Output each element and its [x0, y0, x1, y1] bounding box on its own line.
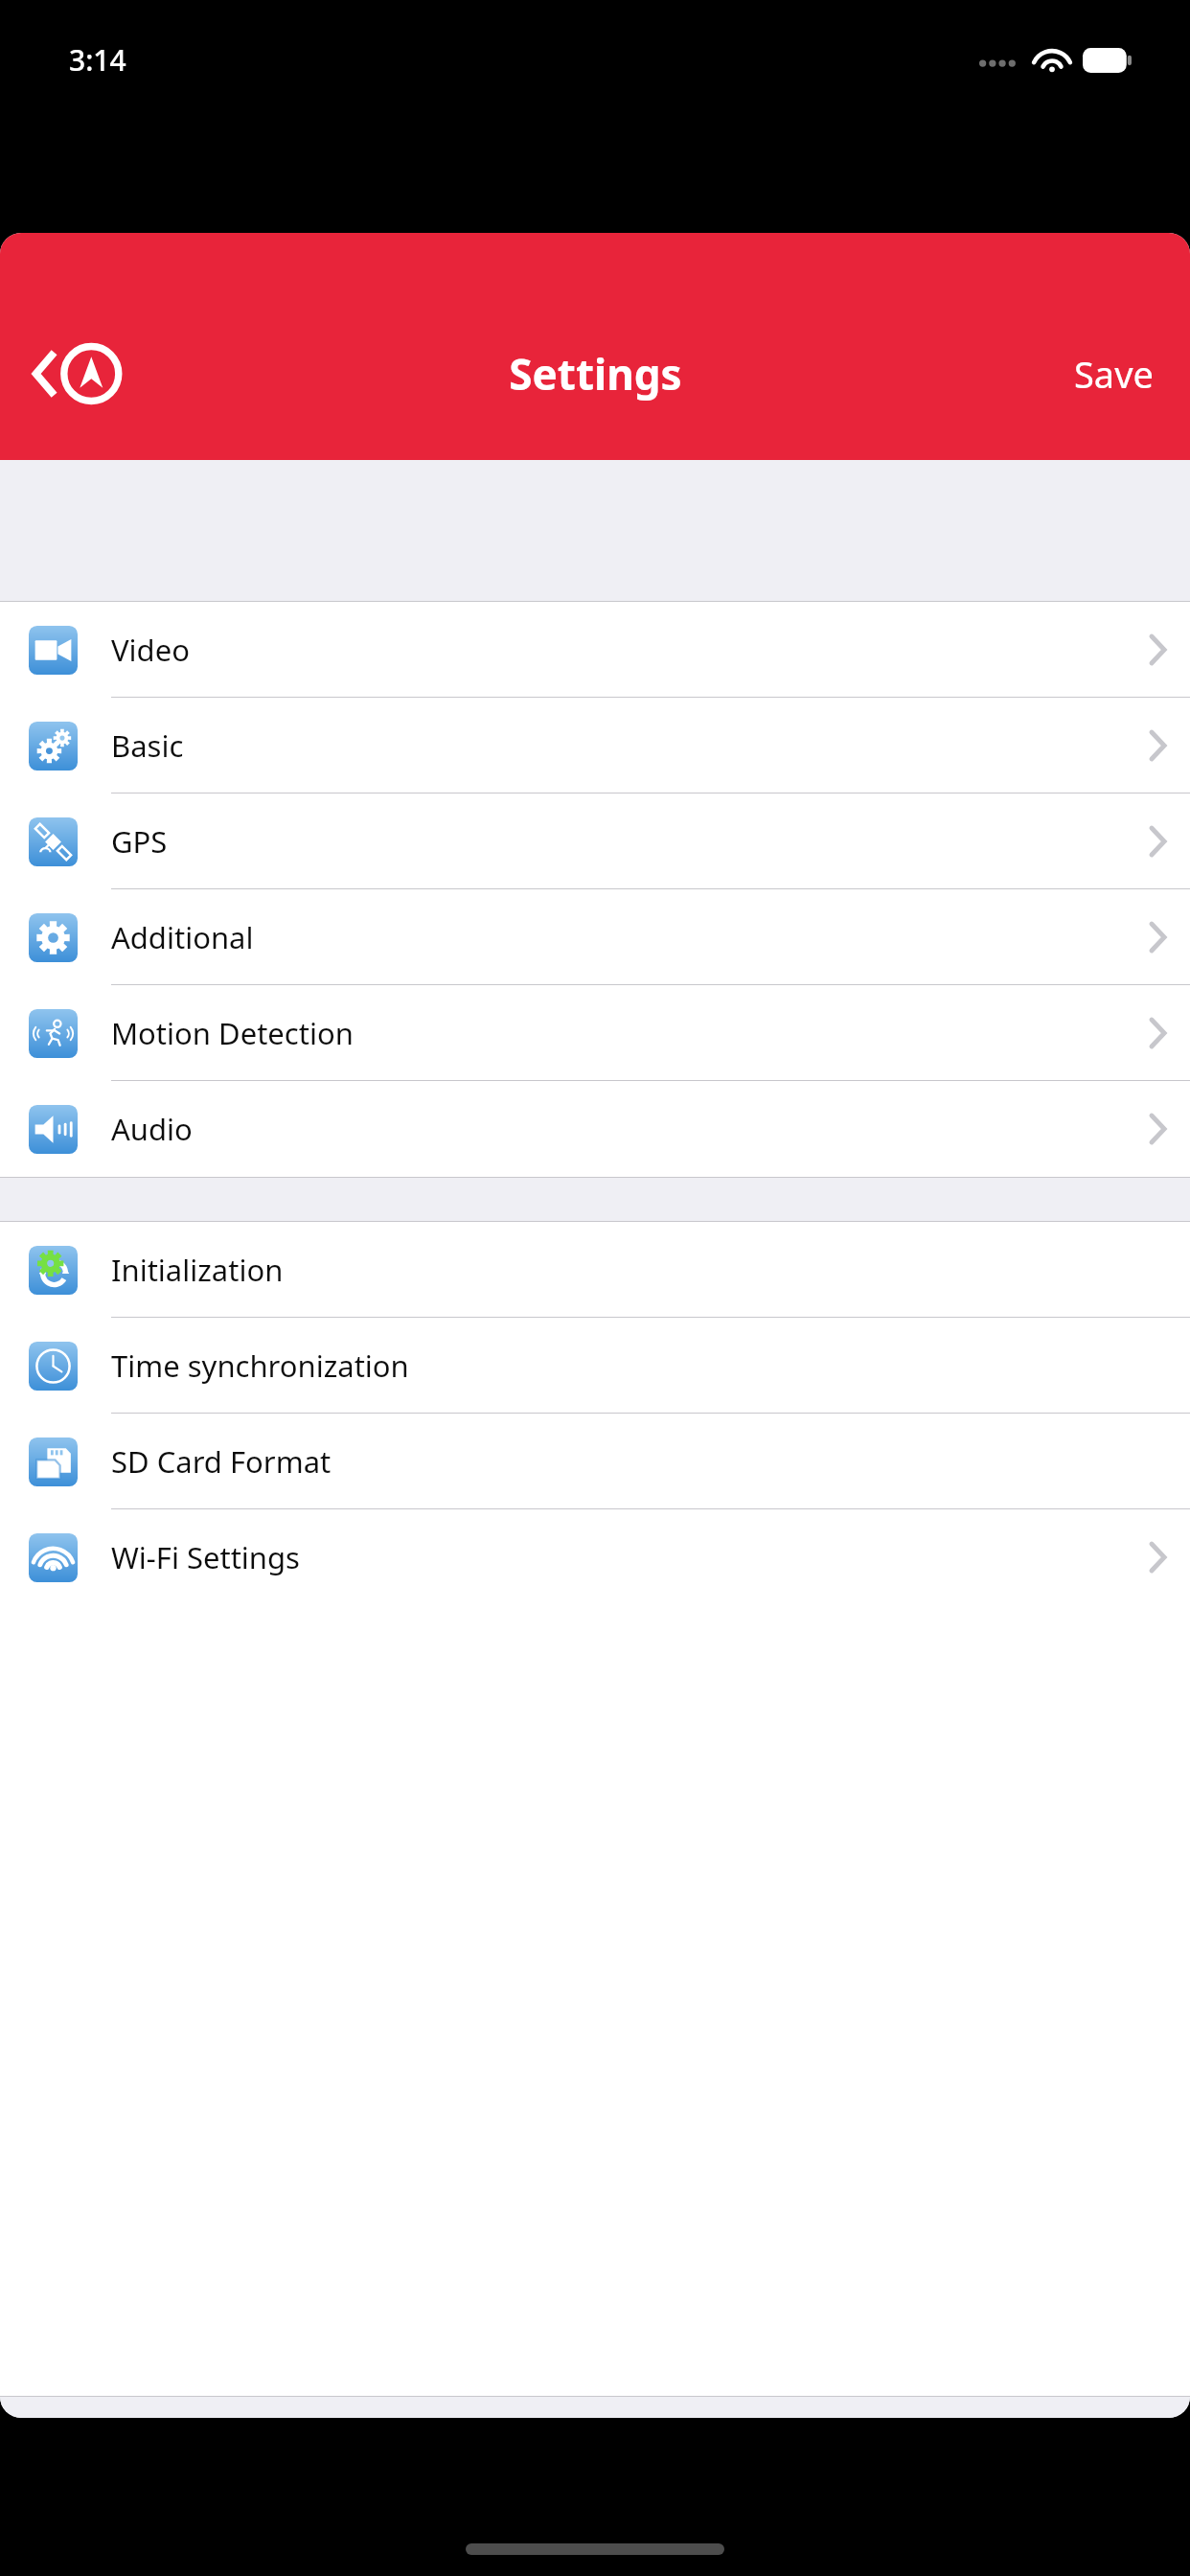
staticText: Basic: [111, 725, 184, 766]
button[interactable]: Audio: [0, 1081, 1190, 1177]
staticText: SD Card Format: [111, 1441, 332, 1482]
button[interactable]: Video: [0, 602, 1190, 698]
staticText: Video: [111, 630, 190, 670]
button[interactable]: GPS: [0, 793, 1190, 889]
button[interactable]: Motion Detection: [0, 985, 1190, 1081]
button[interactable]: Time synchronization: [0, 1318, 1190, 1414]
button[interactable]: Back: [25, 338, 130, 409]
staticText: GPS: [111, 821, 168, 862]
staticText: Audio: [111, 1109, 193, 1149]
staticText: 3:14: [69, 40, 126, 80]
staticText: Wi-Fi Settings: [111, 1537, 300, 1577]
staticText: Motion Detection: [111, 1013, 354, 1053]
staticText: Additional: [111, 917, 254, 957]
staticText: Save: [1074, 349, 1154, 399]
staticText: Settings: [509, 345, 682, 402]
button[interactable]: Basic: [0, 698, 1190, 793]
button[interactable]: Initialization: [0, 1222, 1190, 1318]
staticText: Initialization: [111, 1250, 284, 1290]
staticText: Time synchronization: [111, 1345, 409, 1386]
button[interactable]: SD Card Format: [0, 1414, 1190, 1509]
button[interactable]: Save: [1064, 341, 1163, 406]
button[interactable]: Wi-Fi Settings: [0, 1509, 1190, 1605]
button[interactable]: Additional: [0, 889, 1190, 985]
